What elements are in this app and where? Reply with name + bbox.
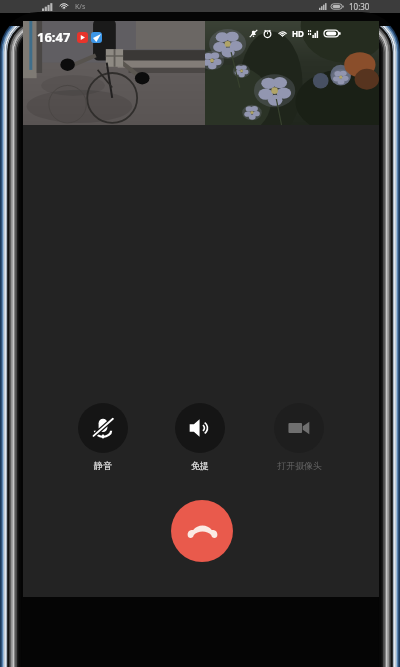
button[interactable]: End call <box>171 500 233 562</box>
staticText: 10:30 <box>349 1 370 12</box>
staticText: 静音 <box>94 460 112 471</box>
staticText: K/s <box>75 2 86 12</box>
button[interactable]: 静音 <box>69 403 137 471</box>
staticText: HD <box>292 28 304 39</box>
staticText: 免提 <box>191 460 209 471</box>
staticText: 16:47 <box>37 28 71 46</box>
button[interactable]: 打开摄像头 <box>265 403 333 471</box>
button[interactable]: 免提 <box>166 403 234 471</box>
staticText: 打开摄像头 <box>277 460 322 471</box>
